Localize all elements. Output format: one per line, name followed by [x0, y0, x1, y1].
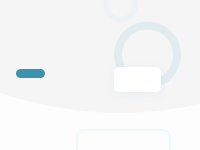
- button[interactable]: Accent: [16, 69, 45, 78]
- button[interactable]: Field: [77, 130, 170, 150]
